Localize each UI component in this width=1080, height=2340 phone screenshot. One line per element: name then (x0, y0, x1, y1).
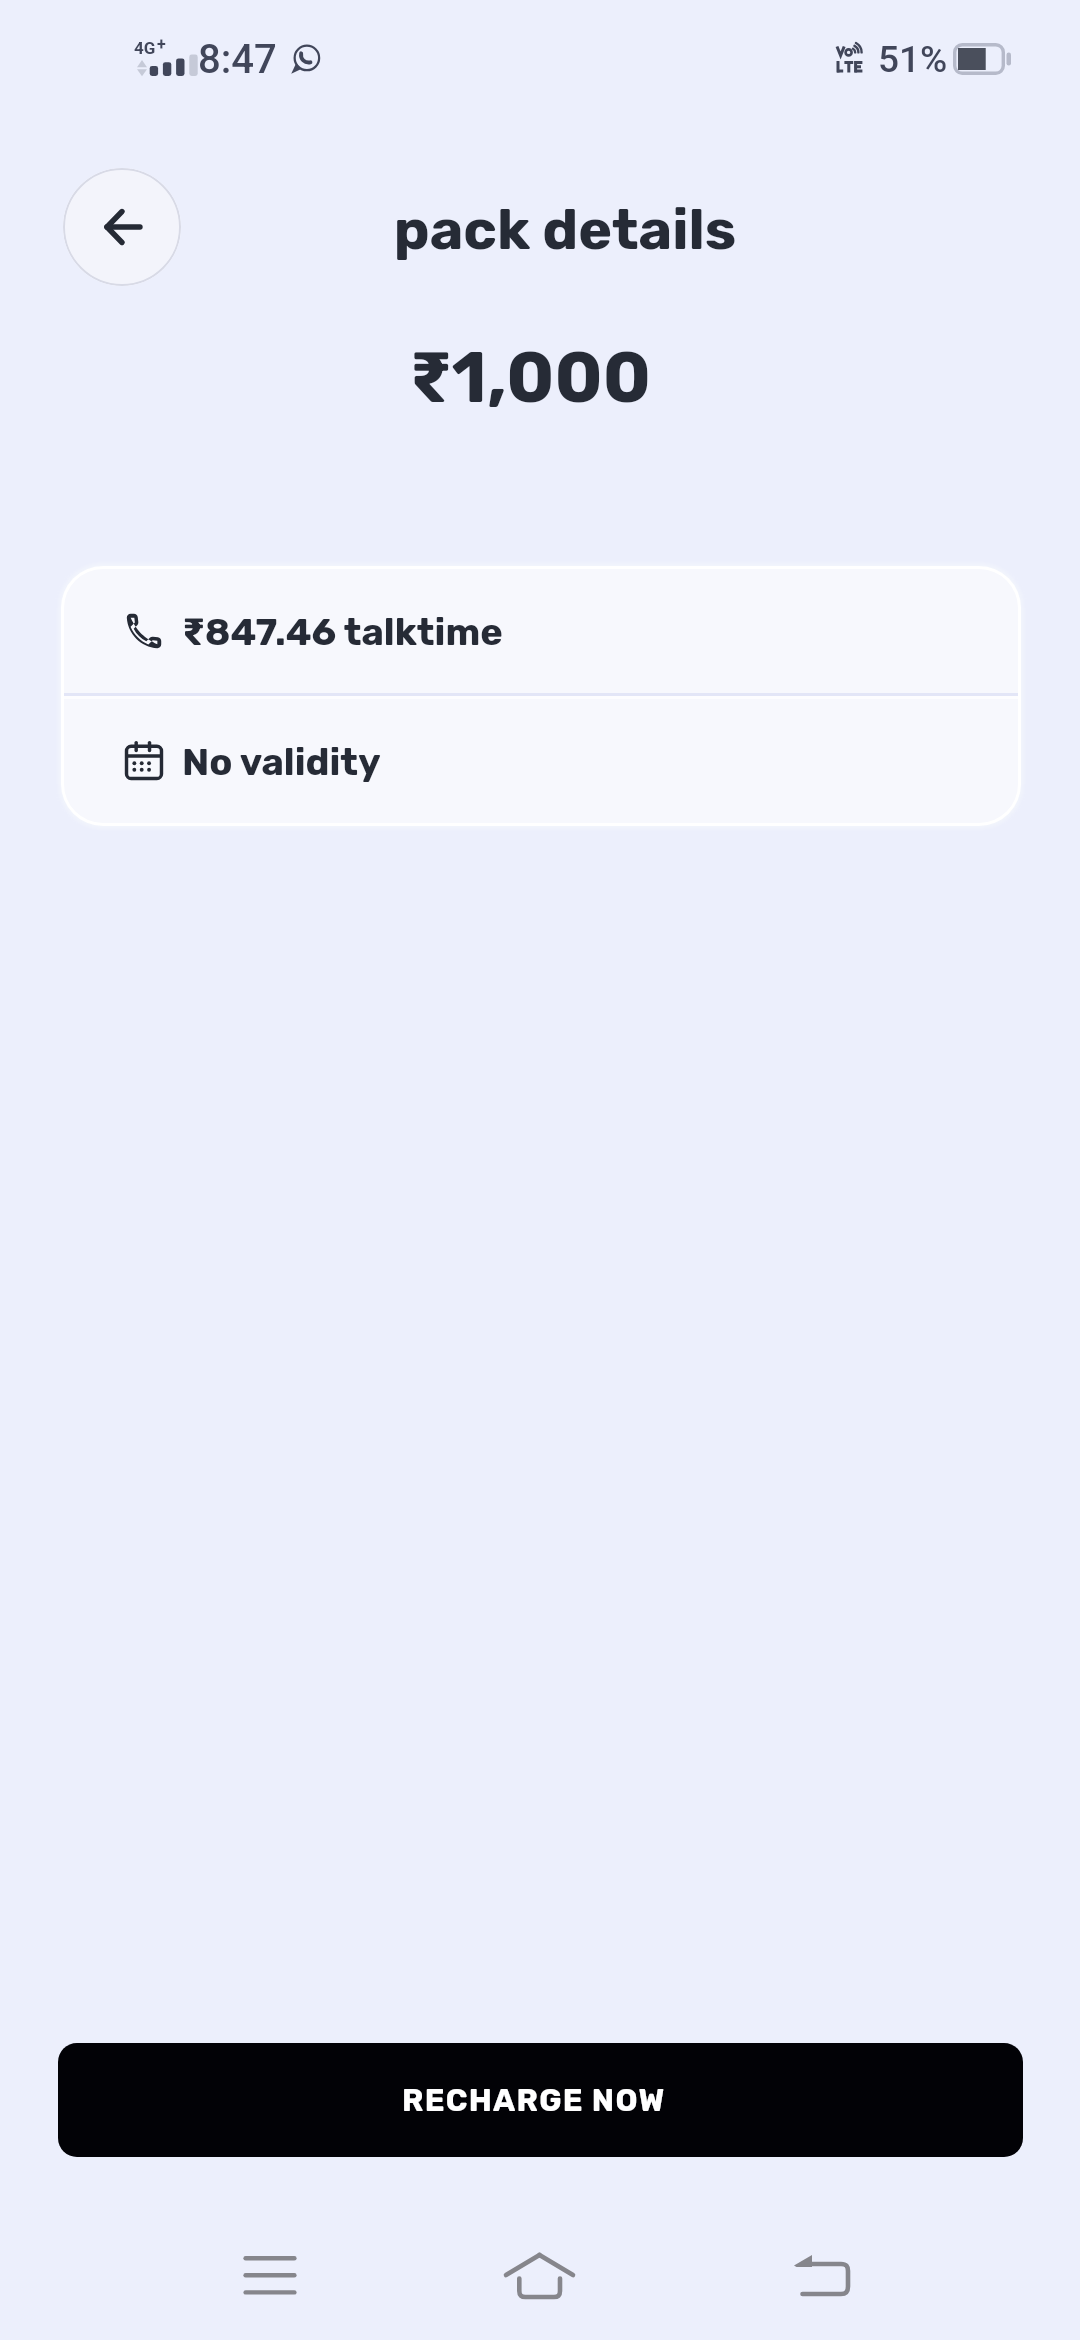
button[interactable]: Back (63, 168, 181, 286)
button[interactable]: RECHARGE NOW (58, 2043, 1023, 2157)
staticText: ₹1,000 (0, 336, 1070, 420)
staticText: ₹847.46 talktime (182, 609, 503, 654)
staticText: + (157, 35, 166, 54)
button[interactable]: Back (755, 2217, 895, 2340)
staticText: RECHARGE NOW (402, 2082, 666, 2119)
button[interactable]: ₹847.46 talktime (64, 569, 1018, 693)
staticText: No validity (182, 739, 381, 784)
staticText: 8:47 (198, 36, 277, 83)
staticText: 51% (878, 38, 948, 81)
button[interactable]: Home (470, 2217, 610, 2340)
staticText: pack details (25, 196, 1080, 264)
button[interactable]: No validity (64, 699, 1018, 823)
staticText: 4G (134, 38, 156, 58)
button[interactable]: Recent apps (201, 2217, 341, 2340)
